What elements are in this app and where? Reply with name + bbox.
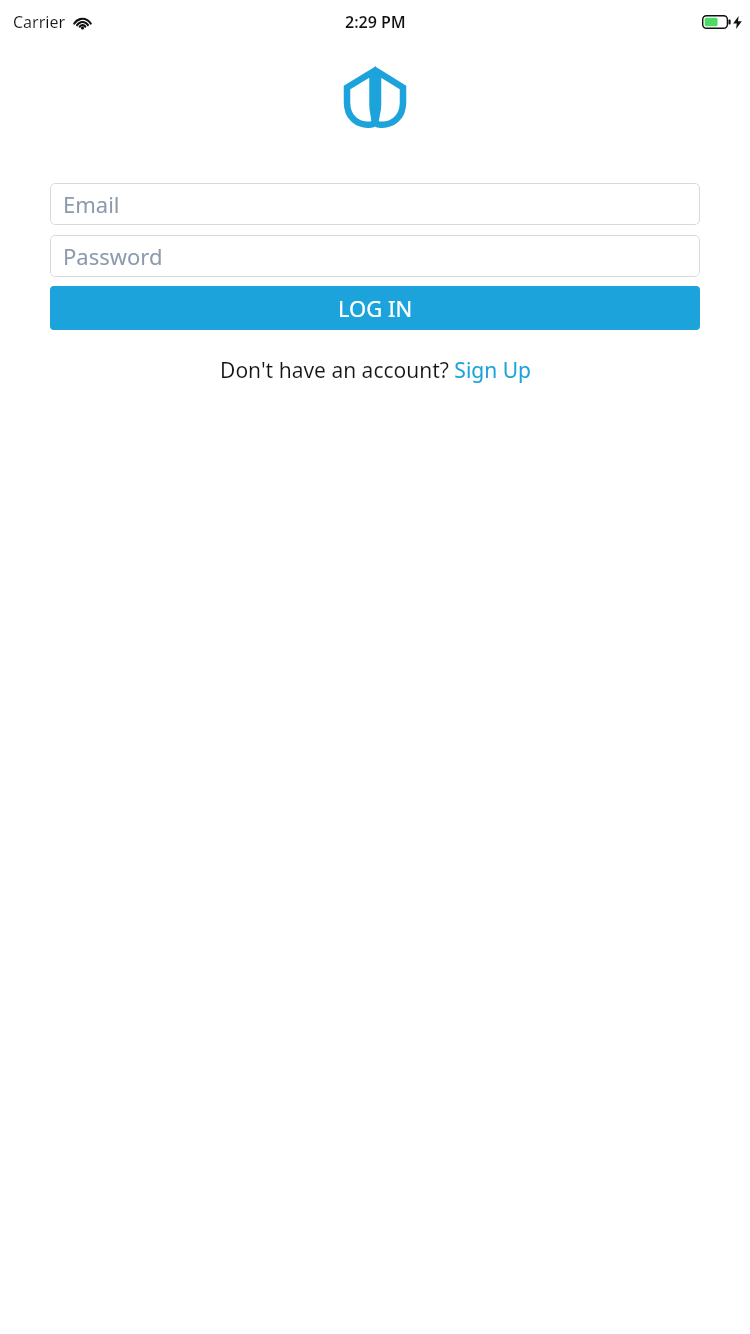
- staticText: Password: [63, 241, 163, 271]
- button[interactable]: Password: [50, 235, 700, 277]
- button[interactable]: Email: [50, 183, 700, 225]
- staticText: 2:29 PM: [345, 11, 406, 33]
- other: Battery: [702, 15, 731, 29]
- button[interactable]: LOG IN: [50, 286, 700, 330]
- other: Wi-Fi: [73, 15, 92, 29]
- staticText: Don't have an account? Sign Up: [220, 356, 531, 385]
- button[interactable]: Don't have an account? Sign Up: [50, 356, 700, 385]
- other: Udacity logo: [343, 68, 407, 130]
- staticText: LOG IN: [338, 293, 413, 323]
- other: Charging: [733, 16, 742, 29]
- staticText: Email: [63, 189, 120, 219]
- staticText: Carrier: [13, 11, 66, 33]
